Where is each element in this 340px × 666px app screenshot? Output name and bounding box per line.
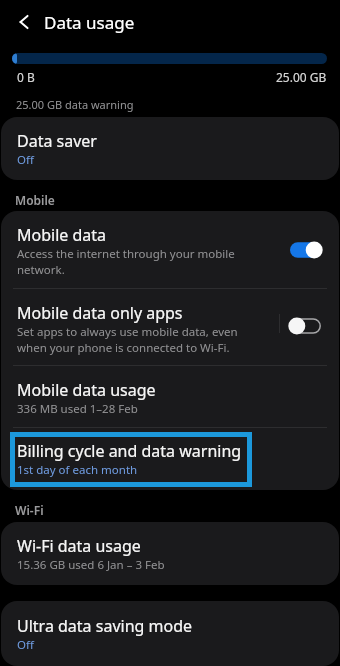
staticText: 1st day of each month	[17, 462, 138, 478]
staticText: Ultra data saving mode	[17, 615, 193, 637]
button[interactable]: Ultra data saving mode	[1, 601, 339, 666]
staticText: Set apps to always use mobile data, even…	[17, 324, 238, 356]
button[interactable]: Switch on	[290, 240, 322, 260]
staticText: Billing cycle and data warning	[17, 440, 242, 462]
button[interactable]: Mobile data only apps	[1, 289, 339, 366]
button[interactable]: Billing cycle and data warning	[10, 432, 252, 487]
staticText: Mobile	[15, 192, 55, 208]
button[interactable]: Mobile data	[1, 211, 339, 288]
staticText: 15.36 GB used 6 Jan – 3 Feb	[17, 557, 165, 573]
button[interactable]: Wi-Fi data usage	[1, 522, 339, 585]
staticText: 25.00 GB	[276, 69, 327, 85]
staticText: Off	[17, 637, 34, 653]
staticText: 336 MB used 1–28 Feb	[17, 401, 138, 417]
staticText: Wi-Fi	[15, 502, 44, 518]
button[interactable]: Data saver	[1, 117, 339, 180]
staticText: Access the internet through your mobile …	[17, 246, 235, 278]
button[interactable]: Navigate up	[10, 8, 38, 36]
button[interactable]: Mobile data usage	[1, 366, 339, 427]
staticText: Mobile data only apps	[17, 302, 183, 324]
button[interactable]: Switch off	[289, 316, 321, 336]
staticText: Mobile data usage	[17, 379, 156, 401]
staticText: Off	[17, 152, 34, 168]
staticText: 0 B	[17, 69, 35, 85]
staticText: Data saver	[17, 130, 97, 152]
staticText: Data usage	[44, 11, 135, 34]
staticText: Wi-Fi data usage	[17, 535, 141, 557]
staticText: Mobile data	[17, 224, 107, 246]
staticText: 25.00 GB data warning	[16, 97, 134, 112]
